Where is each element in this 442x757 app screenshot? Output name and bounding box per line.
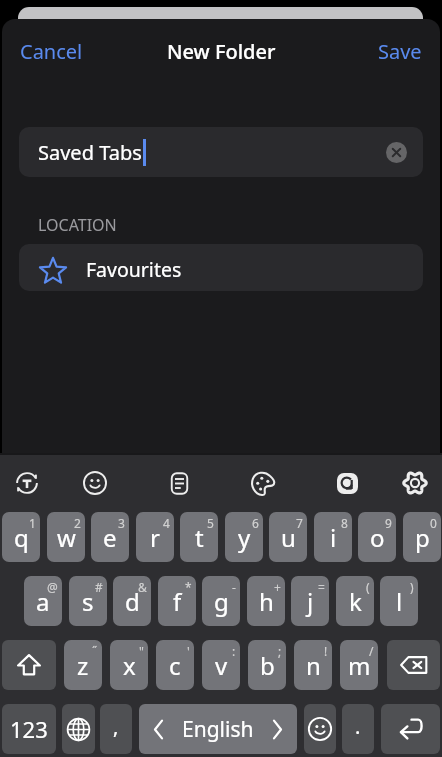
staticText: . [355, 713, 361, 740]
button[interactable]: u [269, 512, 307, 562]
staticText: = [318, 579, 325, 595]
button[interactable]: e [91, 512, 129, 562]
staticText: d [125, 585, 140, 618]
button[interactable]: z [64, 640, 102, 690]
button[interactable]: k [336, 576, 374, 626]
button[interactable]: Stickers [325, 461, 369, 505]
staticText: 3 [118, 515, 125, 531]
staticText: 0 [430, 515, 437, 531]
staticText: i [330, 521, 337, 554]
button[interactable]: x [110, 640, 148, 690]
staticText: 2 [74, 515, 81, 531]
button[interactable]: Saved Tabs [19, 127, 423, 177]
button[interactable]: f [158, 576, 196, 626]
staticText: Saved Tabs [38, 139, 142, 166]
button[interactable]: Favourites [19, 244, 423, 291]
button[interactable]: Shift [2, 640, 56, 690]
staticText: c [169, 649, 181, 682]
staticText: u [281, 521, 296, 554]
staticText: + [274, 579, 281, 595]
staticText: x [123, 649, 136, 682]
button[interactable]: h [247, 576, 285, 626]
button[interactable]: Emoji [304, 704, 336, 754]
button[interactable]: English [139, 704, 297, 754]
button[interactable]: Cancel [12, 32, 91, 71]
button[interactable]: Settings [393, 461, 437, 505]
staticText: z [77, 649, 89, 682]
staticText: ( [366, 579, 370, 595]
staticText: r [150, 521, 160, 554]
staticText: b [260, 649, 275, 682]
button[interactable]: o [358, 512, 396, 562]
button[interactable]: t [180, 512, 218, 562]
button[interactable]: j [291, 576, 329, 626]
staticText: ˝ [92, 643, 98, 659]
staticText: Favourites [86, 256, 182, 283]
button[interactable]: s [69, 576, 107, 626]
button[interactable]: i [314, 512, 352, 562]
staticText: / [369, 643, 374, 659]
staticText: 7 [296, 515, 303, 531]
staticText: - [232, 579, 236, 595]
staticText: n [306, 649, 321, 682]
button[interactable]: g [202, 576, 240, 626]
staticText: y [238, 521, 251, 554]
staticText: , [113, 713, 119, 740]
button[interactable]: Backspace [387, 640, 440, 690]
button[interactable]: p [403, 512, 441, 562]
staticText: 1 [29, 515, 36, 531]
staticText: m [348, 649, 371, 682]
button[interactable]: l [380, 576, 418, 626]
staticText: e [103, 521, 117, 554]
button[interactable]: v [202, 640, 240, 690]
button[interactable]: Clipboard [157, 461, 201, 505]
staticText: @ [47, 579, 58, 595]
staticText: j [307, 585, 314, 618]
staticText: * [185, 579, 192, 595]
button[interactable]: Translate [5, 461, 49, 505]
button[interactable]: m [340, 640, 378, 690]
staticText: ) [410, 579, 414, 595]
button[interactable]: b [248, 640, 286, 690]
button[interactable]: c [156, 640, 194, 690]
button[interactable]: . [342, 704, 374, 754]
staticText: s [82, 585, 94, 618]
button[interactable]: n [294, 640, 332, 690]
staticText: k [349, 585, 362, 618]
staticText: f [173, 585, 182, 618]
staticText: 123 [10, 714, 48, 744]
button[interactable]: Emoji [73, 461, 117, 505]
button[interactable]: q [2, 512, 40, 562]
staticText: g [214, 585, 229, 618]
staticText: LOCATION [38, 214, 117, 236]
button[interactable]: Change language [62, 704, 95, 754]
staticText: v [215, 649, 228, 682]
staticText: " [139, 643, 144, 659]
staticText: 6 [252, 515, 259, 531]
staticText: o [370, 521, 385, 554]
staticText: English [182, 715, 254, 744]
staticText: 5 [207, 515, 214, 531]
staticText: q [14, 521, 29, 554]
staticText: w [57, 521, 76, 554]
staticText: ! [324, 643, 328, 659]
button[interactable]: r [136, 512, 174, 562]
button[interactable]: Save [370, 32, 430, 71]
staticText: New Folder [167, 38, 276, 65]
button[interactable]: Themes [241, 461, 285, 505]
button[interactable]: , [100, 704, 132, 754]
staticText: p [415, 521, 430, 554]
button[interactable]: y [225, 512, 263, 562]
staticText: l [396, 585, 403, 618]
staticText: & [138, 579, 147, 595]
button[interactable]: d [113, 576, 151, 626]
staticText: 4 [163, 515, 170, 531]
staticText: # [95, 579, 103, 595]
staticText: a [36, 585, 50, 618]
button[interactable]: Enter [381, 704, 440, 754]
button[interactable]: a [24, 576, 62, 626]
button[interactable]: Clear text [386, 142, 407, 163]
button[interactable]: w [47, 512, 85, 562]
staticText: : [232, 643, 236, 659]
button[interactable]: 123 [2, 704, 56, 754]
